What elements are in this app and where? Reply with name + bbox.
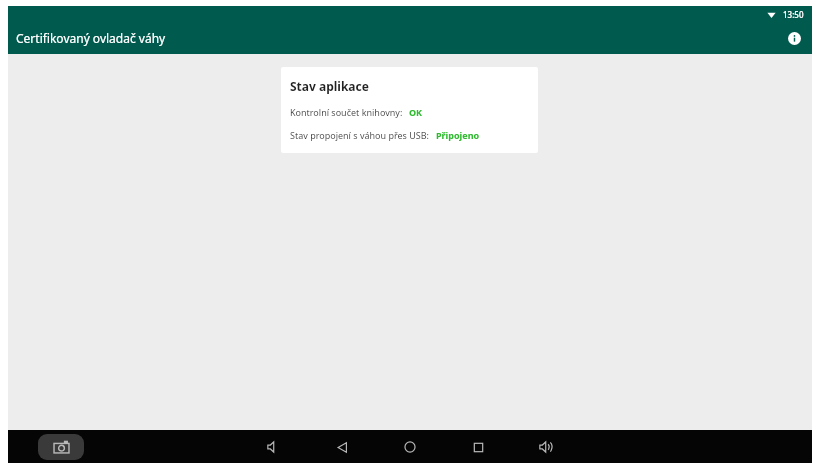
button[interactable]: Home [397,434,423,460]
button[interactable]: Info [782,26,806,50]
staticText: 13:50 [783,9,804,20]
button[interactable]: Volume down [261,434,287,460]
button[interactable]: Recents [465,434,491,460]
button[interactable]: Back [329,434,355,460]
staticText: Certifikovaný ovladač váhy [16,30,166,46]
staticText: Stav propojení s váhou přes USB: [290,129,430,141]
staticText: OK [409,106,423,118]
staticText: Kontrolní součet knihovny: [290,106,403,118]
staticText: Stav aplikace [290,78,369,94]
button[interactable]: Volume up [533,434,559,460]
button[interactable]: Screenshot [38,434,84,460]
staticText: Připojeno [436,129,480,141]
